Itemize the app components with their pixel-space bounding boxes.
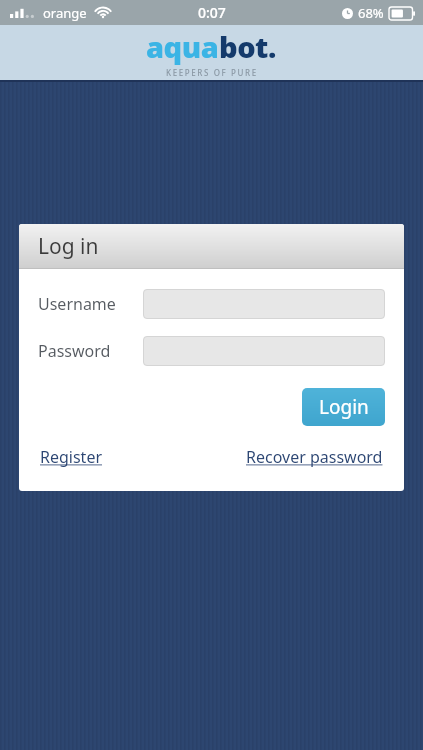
staticText: Username — [38, 293, 143, 315]
button[interactable]: Recover password — [244, 443, 385, 471]
staticText: Login — [319, 394, 369, 420]
staticText: . — [268, 27, 277, 66]
staticText: KEEPERS OF PURE — [166, 67, 258, 78]
button[interactable]: Username — [143, 289, 385, 319]
staticText: Password — [38, 340, 143, 362]
staticText: orange — [43, 4, 87, 22]
staticText: aqua — [146, 27, 219, 66]
button[interactable]: Password — [143, 336, 385, 366]
staticText: Recover password — [246, 446, 383, 468]
staticText: 0:07 — [198, 3, 226, 22]
button[interactable]: Register — [38, 443, 105, 471]
button[interactable]: Login — [302, 388, 385, 426]
staticText: Log in — [38, 232, 99, 261]
staticText: Register — [40, 446, 103, 468]
staticText: 68% — [358, 4, 384, 22]
staticText: bot — [219, 27, 268, 66]
